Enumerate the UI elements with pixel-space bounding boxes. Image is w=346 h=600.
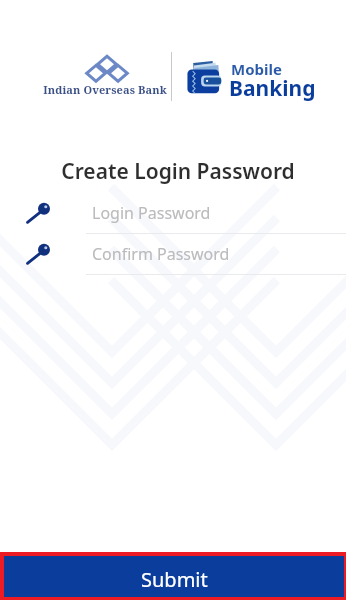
staticText: Indian Overseas Bank xyxy=(31,82,179,97)
staticText: Confirm Password xyxy=(92,243,230,265)
button[interactable]: Submit xyxy=(4,556,344,597)
button[interactable]: Confirm Password xyxy=(0,234,346,275)
staticText: Submit xyxy=(141,566,208,593)
staticText: Login Password xyxy=(92,202,211,224)
other: Mobile Banking wallet icon xyxy=(186,61,222,94)
staticText: Mobile xyxy=(231,59,282,79)
button[interactable]: Login Password xyxy=(0,193,346,234)
other: Indian Overseas Bank logo xyxy=(80,54,134,84)
staticText: Create Login Password xyxy=(5,157,346,186)
staticText: Banking xyxy=(229,74,316,103)
